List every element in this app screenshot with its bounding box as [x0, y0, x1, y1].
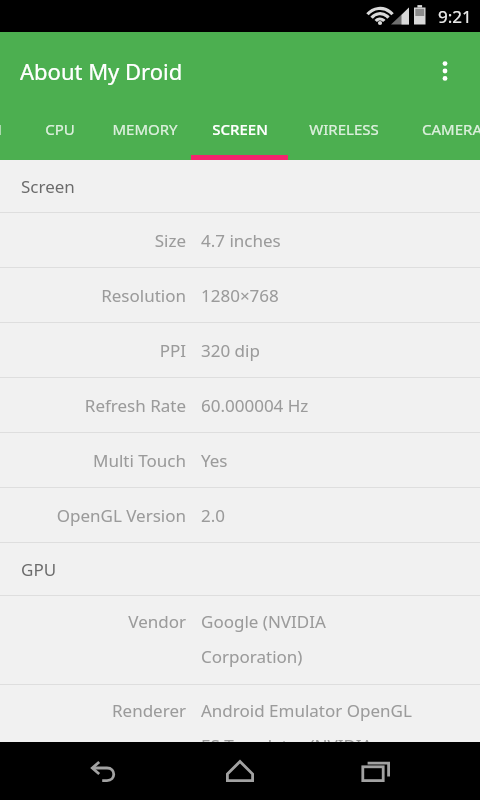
staticText: Android Emulator OpenGL — [201, 699, 412, 722]
staticText: Renderer — [0, 699, 186, 722]
button[interactable]: Size — [0, 213, 480, 267]
staticText: Size — [0, 229, 186, 252]
staticText: 60.000004 Hz — [201, 394, 309, 417]
staticText: WIRELESS — [309, 119, 379, 139]
button[interactable]: More options — [421, 47, 469, 95]
button[interactable]: Resolution — [0, 268, 480, 322]
staticText: MEMORY — [112, 119, 178, 139]
staticText: CPU — [45, 119, 75, 139]
button[interactable]: Refresh Rate — [0, 378, 480, 432]
staticText: ES Translator (NVIDIA — [201, 734, 373, 742]
staticText: Screen — [21, 175, 75, 198]
staticText: Multi Touch — [0, 449, 186, 472]
button[interactable]: WIRELESS — [288, 110, 400, 160]
button[interactable]: CPU — [22, 110, 98, 160]
staticText: 9:21 — [438, 5, 472, 28]
staticText: Yes — [201, 449, 228, 472]
staticText: Resolution — [0, 284, 186, 307]
staticText: 2.0 — [201, 504, 226, 527]
staticText: Vendor — [0, 610, 186, 633]
button[interactable]: Back — [72, 742, 136, 800]
staticText: Corporation) — [201, 645, 303, 668]
staticText: About My Droid — [20, 56, 183, 86]
staticText: CAMERA — [422, 119, 480, 139]
button[interactable]: CAMERA — [400, 110, 480, 160]
button[interactable]: Vendor — [0, 596, 480, 684]
button[interactable]: RAM — [0, 110, 22, 160]
staticText: PPI — [0, 339, 186, 362]
button[interactable]: PPI — [0, 323, 480, 377]
staticText: Refresh Rate — [0, 394, 186, 417]
staticText: 1280×768 — [201, 284, 279, 307]
button[interactable]: MEMORY — [98, 110, 191, 160]
staticText: RAM — [0, 119, 2, 139]
staticText: SCREEN — [212, 119, 268, 139]
button[interactable]: Renderer — [0, 685, 480, 742]
staticText: 320 dip — [201, 339, 260, 362]
staticText: Google (NVIDIA — [201, 610, 326, 633]
button[interactable]: OpenGL Version — [0, 488, 480, 542]
button[interactable]: Home — [208, 742, 272, 800]
button[interactable]: Multi Touch — [0, 433, 480, 487]
staticText: 4.7 inches — [201, 229, 281, 252]
button[interactable]: SCREEN — [191, 110, 288, 160]
staticText: OpenGL Version — [0, 504, 186, 527]
staticText: GPU — [21, 558, 57, 581]
button[interactable]: Recent apps — [344, 742, 408, 800]
